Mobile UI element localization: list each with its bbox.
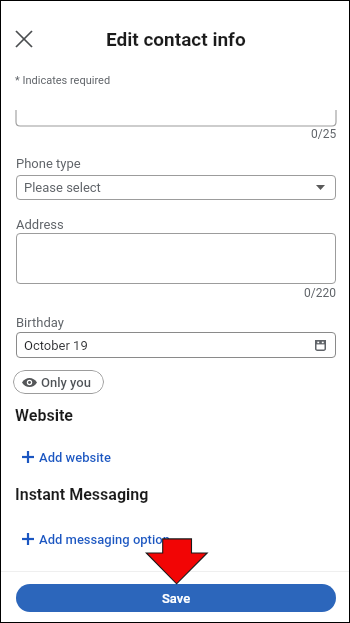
staticText: Please select xyxy=(24,180,101,195)
staticText: 0/25 xyxy=(311,127,337,141)
staticText: Instant Messaging xyxy=(15,485,149,504)
staticText: Birthday xyxy=(16,315,64,330)
button[interactable]: Add website xyxy=(16,445,121,469)
staticText: Add messaging option xyxy=(39,532,170,547)
staticText: * Indicates required xyxy=(15,74,111,87)
staticText: 0/220 xyxy=(304,286,336,300)
button[interactable] xyxy=(16,233,336,284)
button[interactable]: Please select xyxy=(16,175,336,200)
staticText: Only you xyxy=(41,375,91,390)
button[interactable]: Add messaging option xyxy=(16,527,180,551)
staticText: Website xyxy=(15,406,73,425)
button[interactable]: Close xyxy=(9,24,39,54)
button[interactable]: Save xyxy=(16,584,336,612)
button[interactable]: Only you xyxy=(13,370,104,394)
staticText: Edit contact info xyxy=(106,28,246,50)
staticText: Phone type xyxy=(16,156,81,171)
staticText: Save xyxy=(162,591,191,606)
staticText: Address xyxy=(16,217,64,232)
button[interactable]: October 19 xyxy=(16,332,336,358)
staticText: Add website xyxy=(39,450,111,465)
staticText: October 19 xyxy=(24,338,88,353)
